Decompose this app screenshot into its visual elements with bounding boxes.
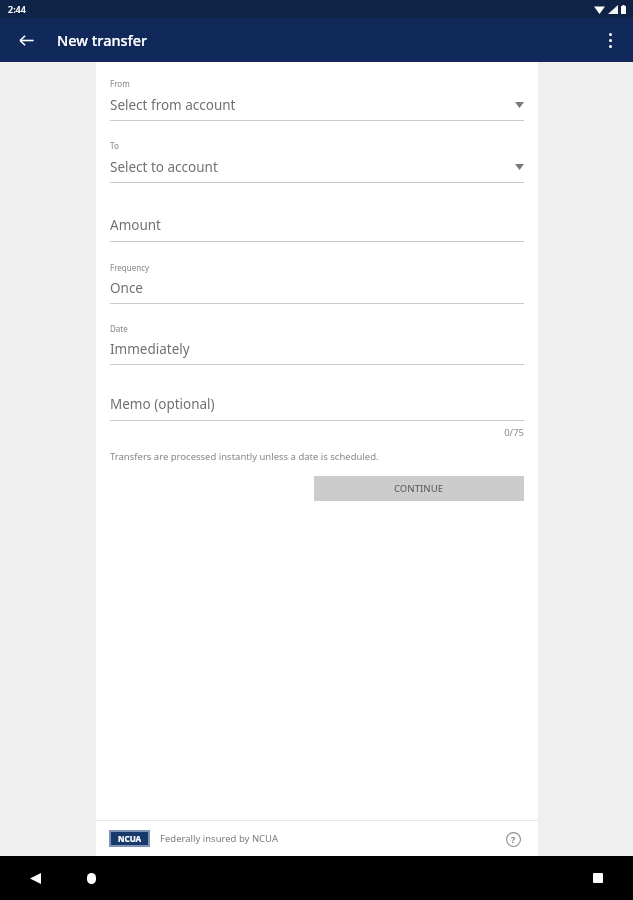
staticText: From <box>110 78 130 89</box>
button[interactable]: Back <box>22 865 48 891</box>
staticText: Select from account <box>110 96 236 114</box>
staticText: Amount <box>110 216 161 234</box>
button[interactable]: Select to account <box>110 158 524 176</box>
button[interactable]: More options <box>593 23 627 57</box>
staticText: NCUA <box>118 833 142 844</box>
staticText: 2:44 <box>8 3 26 15</box>
staticText: Memo (optional) <box>110 395 215 413</box>
staticText: CONTINUE <box>394 482 444 495</box>
staticText: Transfers are processed instantly unless… <box>110 450 379 463</box>
button[interactable]: Back <box>10 24 42 56</box>
button[interactable]: Immediately <box>110 340 524 358</box>
staticText: Federally insured by NCUA <box>160 832 279 845</box>
button[interactable]: Select from account <box>110 96 524 114</box>
button[interactable]: Help <box>501 827 525 851</box>
button[interactable]: Once <box>110 279 524 297</box>
staticText: To <box>110 140 119 151</box>
staticText: Frequency <box>110 262 150 273</box>
staticText: 0/75 <box>110 426 524 439</box>
staticText: Date <box>110 323 128 334</box>
button[interactable]: Amount <box>110 216 524 234</box>
button[interactable]: CONTINUE <box>314 476 524 501</box>
staticText: New transfer <box>57 30 148 50</box>
staticText: Once <box>110 279 143 297</box>
staticText: Immediately <box>110 340 190 358</box>
button[interactable]: Recent apps <box>585 865 611 891</box>
button[interactable]: Home <box>78 865 104 891</box>
staticText: ? <box>511 833 516 845</box>
button[interactable]: Memo (optional) <box>110 395 524 413</box>
staticText: Select to account <box>110 158 218 176</box>
